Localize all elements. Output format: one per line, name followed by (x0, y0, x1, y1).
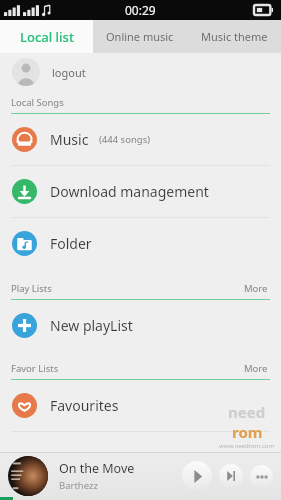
staticText: More (244, 282, 268, 295)
button[interactable]: More (242, 360, 270, 377)
staticText: Local Songs (11, 96, 64, 109)
staticText: Music theme (201, 29, 268, 44)
button[interactable]: New playList (0, 300, 281, 351)
staticText: Favor Lists (11, 362, 59, 375)
button[interactable]: logout (0, 53, 281, 91)
button[interactable]: More options (250, 465, 273, 488)
button[interactable]: Folder (0, 218, 281, 269)
button[interactable]: Online music (93, 20, 187, 53)
staticText: (444 songs) (99, 133, 151, 146)
staticText: Folder (50, 234, 92, 253)
staticText: More (244, 362, 268, 375)
button[interactable]: More (242, 280, 270, 297)
staticText: www.needrom.com (219, 442, 275, 450)
staticText: Local list (20, 28, 74, 46)
button[interactable]: Download management (0, 166, 281, 217)
staticText: rom (232, 422, 263, 442)
staticText: Play Lists (11, 282, 52, 295)
button[interactable]: Next (219, 464, 243, 488)
button[interactable]: Music (0, 114, 281, 165)
button[interactable]: Play (182, 461, 212, 491)
staticText: Music (50, 130, 89, 149)
staticText: New playList (50, 316, 133, 335)
staticText: Favourites (50, 396, 119, 415)
staticText: Download management (50, 182, 209, 201)
button[interactable]: Local list (0, 20, 93, 53)
staticText: 00:29 (125, 2, 156, 18)
staticText: Barthezz (59, 479, 98, 492)
staticText: logout (52, 65, 86, 80)
staticText: On the Move (59, 460, 135, 477)
button[interactable]: Favourites (0, 380, 281, 431)
button[interactable]: Music theme (187, 20, 281, 53)
staticText: need (228, 402, 266, 422)
staticText: Online music (106, 29, 174, 44)
